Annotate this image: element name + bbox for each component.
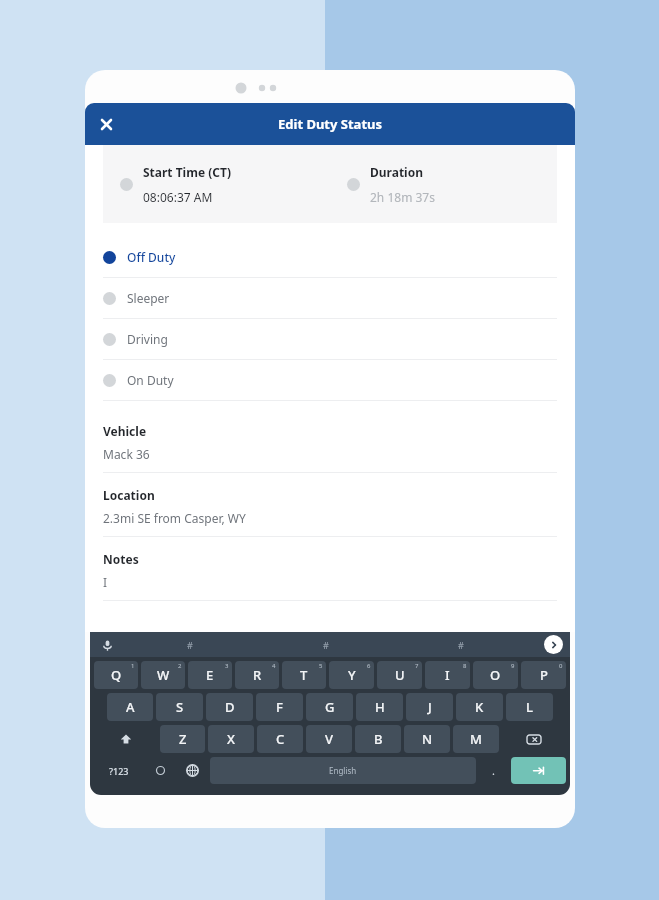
button[interactable]: Sleeper bbox=[85, 278, 575, 319]
staticText: 2.3mi SE from Casper, WY bbox=[103, 510, 246, 526]
button[interactable]: W bbox=[141, 661, 185, 689]
button[interactable]: # bbox=[122, 632, 258, 657]
staticText: Sleeper bbox=[127, 290, 170, 306]
button[interactable]: ?123 bbox=[94, 757, 143, 784]
staticText: I bbox=[445, 666, 450, 684]
staticText: G bbox=[325, 698, 335, 716]
staticText: J bbox=[428, 698, 432, 716]
staticText: 6 bbox=[367, 662, 371, 670]
button[interactable]: Close bbox=[85, 103, 127, 145]
staticText: 9 bbox=[511, 662, 515, 670]
staticText: On Duty bbox=[127, 372, 174, 388]
button[interactable]: F bbox=[256, 693, 303, 721]
button[interactable]: More suggestions bbox=[544, 635, 563, 654]
button[interactable]: Backspace bbox=[502, 725, 566, 753]
button[interactable]: Y bbox=[329, 661, 374, 689]
button[interactable]: N bbox=[404, 725, 450, 753]
button[interactable]: A bbox=[107, 693, 153, 721]
staticText: A bbox=[126, 698, 135, 716]
staticText: B bbox=[374, 730, 383, 748]
button[interactable]: Location bbox=[85, 481, 575, 545]
staticText: 3 bbox=[225, 662, 229, 670]
staticText: R bbox=[253, 666, 262, 684]
staticText: 7 bbox=[415, 662, 419, 670]
staticText: T bbox=[300, 666, 308, 684]
staticText: Start Time (CT) bbox=[143, 164, 231, 180]
staticText: 08:06:37 AM bbox=[143, 189, 213, 205]
staticText: U bbox=[395, 666, 405, 684]
button[interactable]: . bbox=[479, 757, 508, 784]
staticText: O bbox=[490, 666, 501, 684]
staticText: Vehicle bbox=[103, 423, 147, 439]
staticText: S bbox=[176, 698, 184, 716]
staticText: 2h 18m 37s bbox=[370, 189, 435, 205]
button[interactable]: Emoji bbox=[146, 757, 175, 784]
staticText: # bbox=[187, 639, 193, 651]
button[interactable]: Start Time (CT) bbox=[103, 145, 330, 223]
button[interactable]: # bbox=[258, 632, 393, 657]
staticText: English bbox=[329, 765, 357, 776]
button[interactable]: Duration bbox=[330, 145, 557, 223]
staticText: F bbox=[276, 698, 283, 716]
staticText: 1 bbox=[131, 662, 135, 670]
button[interactable]: E bbox=[188, 661, 232, 689]
button[interactable]: D bbox=[206, 693, 253, 721]
staticText: 2 bbox=[178, 662, 182, 670]
button[interactable]: B bbox=[355, 725, 401, 753]
button[interactable]: English bbox=[210, 757, 476, 784]
button[interactable]: Voice input bbox=[98, 636, 116, 654]
button[interactable]: Change language bbox=[178, 757, 207, 784]
button[interactable]: C bbox=[257, 725, 303, 753]
button[interactable]: Enter bbox=[511, 757, 566, 784]
button[interactable]: Off Duty bbox=[85, 237, 575, 278]
staticText: Edit Duty Status bbox=[278, 115, 383, 133]
button[interactable]: O bbox=[473, 661, 518, 689]
staticText: ?123 bbox=[109, 765, 129, 777]
staticText: C bbox=[276, 730, 285, 748]
button[interactable]: P bbox=[521, 661, 566, 689]
button[interactable]: Z bbox=[160, 725, 205, 753]
button[interactable]: Vehicle bbox=[85, 417, 575, 481]
staticText: D bbox=[225, 698, 235, 716]
button[interactable]: M bbox=[453, 725, 499, 753]
staticText: I bbox=[103, 574, 108, 590]
button[interactable]: J bbox=[406, 693, 453, 721]
button[interactable]: S bbox=[156, 693, 203, 721]
staticText: Q bbox=[111, 666, 122, 684]
button[interactable]: K bbox=[456, 693, 503, 721]
button[interactable]: R bbox=[235, 661, 279, 689]
staticText: . bbox=[492, 763, 495, 778]
staticText: X bbox=[227, 730, 235, 748]
button[interactable]: I bbox=[425, 661, 470, 689]
staticText: Mack 36 bbox=[103, 446, 150, 462]
button[interactable]: V bbox=[306, 725, 352, 753]
staticText: 4 bbox=[272, 662, 276, 670]
staticText: 8 bbox=[463, 662, 467, 670]
staticText: Driving bbox=[127, 331, 168, 347]
button[interactable]: T bbox=[282, 661, 326, 689]
staticText: V bbox=[325, 730, 333, 748]
button[interactable]: Notes bbox=[85, 545, 575, 609]
staticText: 5 bbox=[319, 662, 323, 670]
button[interactable]: Shift bbox=[94, 725, 157, 753]
staticText: Y bbox=[348, 666, 356, 684]
staticText: 0 bbox=[559, 662, 563, 670]
staticText: Location bbox=[103, 487, 155, 503]
staticText: P bbox=[540, 666, 548, 684]
button[interactable]: Q bbox=[94, 661, 138, 689]
button[interactable]: H bbox=[356, 693, 403, 721]
button[interactable]: U bbox=[377, 661, 422, 689]
staticText: # bbox=[323, 639, 329, 651]
button[interactable]: On Duty bbox=[85, 360, 575, 401]
staticText: K bbox=[475, 698, 484, 716]
staticText: M bbox=[470, 730, 482, 748]
button[interactable]: G bbox=[306, 693, 353, 721]
staticText: # bbox=[458, 639, 464, 651]
staticText: W bbox=[157, 666, 170, 684]
staticText: Notes bbox=[103, 551, 139, 567]
button[interactable]: Driving bbox=[85, 319, 575, 360]
button[interactable]: L bbox=[506, 693, 553, 721]
staticText: H bbox=[375, 698, 385, 716]
button[interactable]: X bbox=[208, 725, 254, 753]
button[interactable]: # bbox=[393, 632, 528, 657]
